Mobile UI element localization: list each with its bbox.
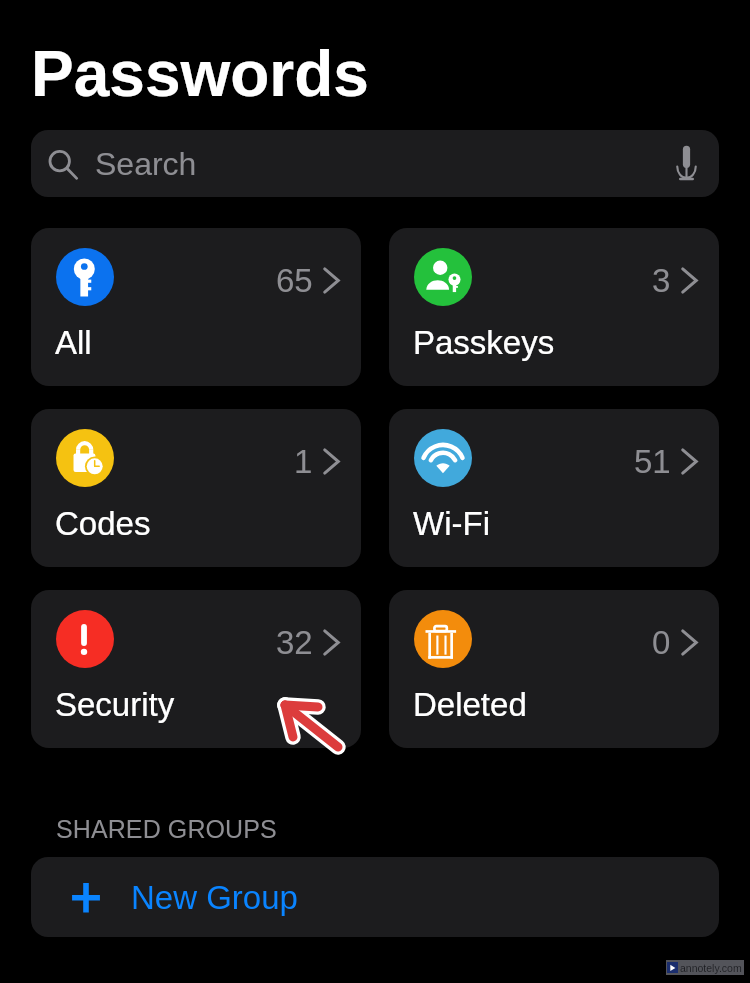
button[interactable]: 3 [389, 228, 719, 386]
button[interactable]: 32 [31, 590, 361, 748]
staticText: Passwords [31, 38, 369, 110]
staticText: Deleted [413, 686, 527, 723]
staticText: All [55, 324, 92, 361]
staticText: 3 [652, 262, 671, 299]
staticText: SHARED GROUPS [56, 815, 277, 843]
staticText: 51 [634, 443, 671, 480]
button[interactable]: Search [31, 130, 719, 197]
staticText: 1 [294, 443, 313, 480]
staticText: 32 [276, 624, 313, 661]
button[interactable]: 51 [389, 409, 719, 567]
staticText: 0 [652, 624, 671, 661]
button[interactable]: 65 [31, 228, 361, 386]
staticText: Security [55, 686, 175, 723]
button[interactable]: 0 [389, 590, 719, 748]
button[interactable]: New Group [31, 857, 719, 937]
staticText: Wi-Fi [413, 505, 490, 542]
staticText: New Group [131, 879, 298, 916]
staticText: Search [95, 146, 197, 182]
button[interactable]: Voice search [668, 138, 705, 189]
staticText: annotely.com [680, 962, 742, 974]
button[interactable]: 1 [31, 409, 361, 567]
staticText: Codes [55, 505, 151, 542]
staticText: Passkeys [413, 324, 555, 361]
staticText: 65 [276, 262, 313, 299]
